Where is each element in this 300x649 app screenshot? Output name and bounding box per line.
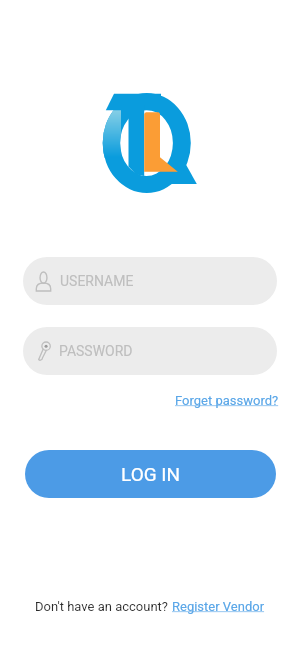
staticText: LOG IN — [121, 463, 181, 485]
button[interactable]: USERNAME — [23, 257, 277, 305]
staticText: Forget password? — [175, 393, 279, 408]
button[interactable]: LOG IN — [25, 450, 276, 498]
staticText: PASSWORD — [59, 343, 133, 359]
staticText: USERNAME — [60, 273, 134, 289]
button[interactable]: Register Vendor — [172, 599, 265, 614]
button[interactable]: Forget password? — [175, 393, 279, 408]
staticText: Don't have an account? — [35, 599, 172, 614]
staticText: Register Vendor — [172, 599, 265, 614]
button[interactable]: PASSWORD — [23, 327, 277, 375]
